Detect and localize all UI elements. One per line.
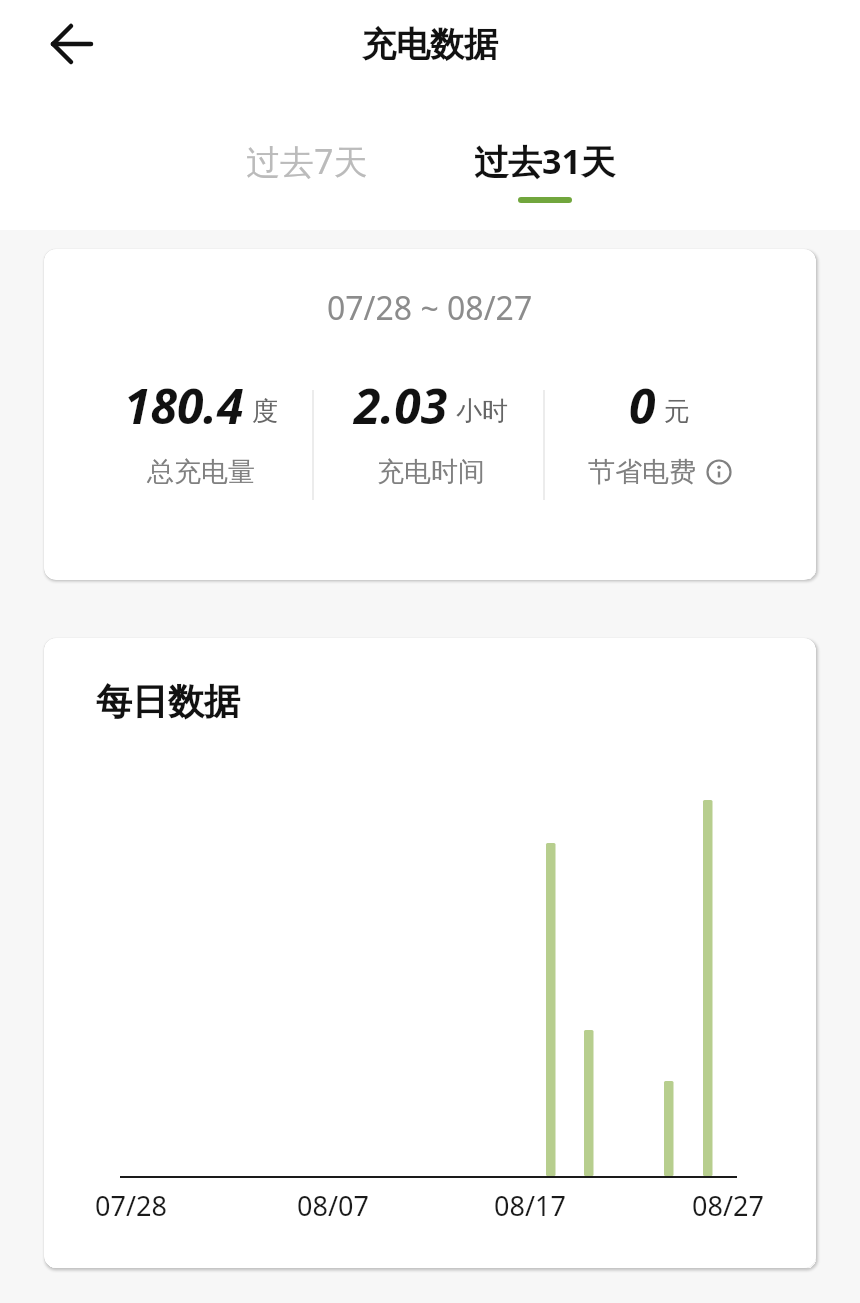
staticText: 08/27 <box>692 1187 764 1224</box>
staticText: 08/17 <box>494 1187 566 1224</box>
button[interactable]: 过去31天 <box>474 138 615 203</box>
staticText: 总充电量 <box>147 455 255 489</box>
staticText: 元 <box>664 395 690 428</box>
staticText: 07/28 <box>95 1187 167 1224</box>
staticText: 07/28 ~ 08/27 <box>327 286 533 330</box>
button[interactable] <box>36 8 108 80</box>
staticText: 充电时间 <box>377 455 485 489</box>
staticText: 度 <box>252 395 278 428</box>
staticText: 180.4 <box>124 373 244 438</box>
staticText: 每日数据 <box>96 679 240 724</box>
button[interactable]: 过去7天 <box>246 138 368 203</box>
staticText: 0 <box>629 373 656 438</box>
staticText: 小时 <box>456 395 508 428</box>
staticText: 过去31天 <box>474 138 615 184</box>
staticText: 过去7天 <box>246 138 368 184</box>
staticText: 节省电费 <box>588 455 696 489</box>
staticText: 充电数据 <box>362 23 498 66</box>
staticText: 08/07 <box>297 1187 369 1224</box>
staticText: 2.03 <box>354 373 448 438</box>
